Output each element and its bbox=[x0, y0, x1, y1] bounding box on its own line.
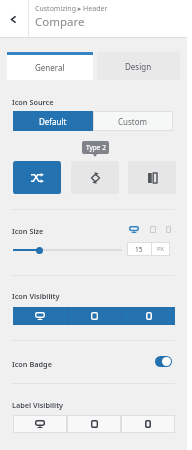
button[interactable]: Desktop bbox=[126, 223, 141, 235]
staticText: Icon Size bbox=[12, 226, 44, 236]
button[interactable]: Mobile bbox=[162, 223, 174, 235]
staticText: Icon Source bbox=[12, 97, 54, 107]
staticText: Type 2 bbox=[86, 143, 106, 152]
button[interactable]: 15 bbox=[127, 242, 151, 256]
staticText: Customizing ▸ Header bbox=[35, 4, 108, 14]
staticText: Design bbox=[125, 61, 152, 72]
button[interactable]: Icon style bbox=[71, 161, 119, 194]
button[interactable]: Device visibility bbox=[13, 307, 67, 325]
staticText: Default bbox=[39, 116, 67, 127]
button[interactable]: General bbox=[7, 52, 93, 80]
staticText: 15 bbox=[135, 245, 143, 254]
staticText: Label Visibility bbox=[12, 400, 64, 410]
staticText: Custom bbox=[118, 116, 148, 127]
button[interactable]: Icon style bbox=[13, 161, 61, 194]
staticText: Icon Visibility bbox=[12, 291, 60, 301]
button[interactable]: Custom bbox=[93, 111, 173, 131]
staticText: General bbox=[35, 62, 65, 73]
button[interactable]: Default bbox=[13, 111, 93, 131]
button[interactable]: Icon size slider bbox=[13, 244, 122, 256]
button[interactable]: Device visibility bbox=[13, 415, 67, 433]
button[interactable]: Device visibility bbox=[67, 415, 121, 433]
button[interactable]: Design bbox=[97, 52, 180, 80]
button[interactable]: Device visibility bbox=[68, 307, 121, 325]
button[interactable]: Tablet bbox=[147, 223, 159, 235]
staticText: PX bbox=[157, 245, 165, 253]
staticText: Icon Badge bbox=[12, 359, 52, 369]
button[interactable]: Icon style bbox=[128, 161, 176, 194]
button[interactable]: Icon Badge toggle bbox=[155, 356, 172, 367]
button[interactable]: Back bbox=[0, 0, 27, 38]
staticText: Compare bbox=[35, 14, 85, 30]
button[interactable]: Device visibility bbox=[121, 415, 175, 433]
button[interactable]: Device visibility bbox=[122, 307, 175, 325]
